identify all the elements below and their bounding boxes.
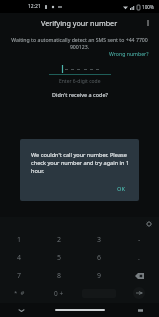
button[interactable]: * # [0,285,39,301]
button[interactable]: Home [55,309,105,311]
staticText: 8 [57,271,62,281]
staticText: OK [117,185,125,193]
button[interactable]: Didn't receive a code? [50,89,110,100]
button[interactable]: Backspace [119,267,159,285]
staticText: Didn't receive a code? [52,91,108,98]
staticText: - [138,235,141,245]
staticText: 0 + [54,289,64,298]
staticText: . [138,253,140,263]
button[interactable]: Recents [135,305,145,315]
staticText: Waiting to automatically detect an SMS s… [10,36,149,50]
button[interactable]: 4 [0,249,39,267]
button[interactable]: 3 [79,231,119,249]
staticText: Verifying your number [41,18,118,28]
staticText: 7 [17,271,22,281]
staticText: Enter 6-digit code [59,78,101,85]
button[interactable]: 9 [79,267,119,285]
button[interactable]: Keyboard settings [144,219,154,229]
button[interactable]: Enter [133,287,145,299]
staticText: 2 [57,235,62,245]
staticText: 100% [142,4,154,10]
button[interactable]: 6 [79,249,119,267]
button[interactable] [49,62,111,75]
staticText: We couldn't call your number. Please che… [31,151,131,175]
button[interactable]: 0 + [39,285,79,301]
staticText: * # [14,289,25,297]
button[interactable]: 2 [39,231,79,249]
button[interactable]: 5 [39,249,79,267]
button[interactable]: OK [111,182,131,196]
staticText: 5 [57,253,62,263]
staticText: 4 [17,253,22,263]
staticText: 3 [97,235,102,245]
staticText: 12:21 [28,3,41,10]
staticText: 1 [17,235,22,245]
button[interactable]: 8 [39,267,79,285]
staticText: 9 [97,271,102,281]
staticText: 6 [97,253,102,263]
button[interactable]: More options [140,15,156,31]
button[interactable]: 1 [0,231,39,249]
button[interactable]: Wrong number? [109,50,149,57]
button[interactable]: Hide keyboard [16,305,26,315]
button[interactable]: 7 [0,267,39,285]
